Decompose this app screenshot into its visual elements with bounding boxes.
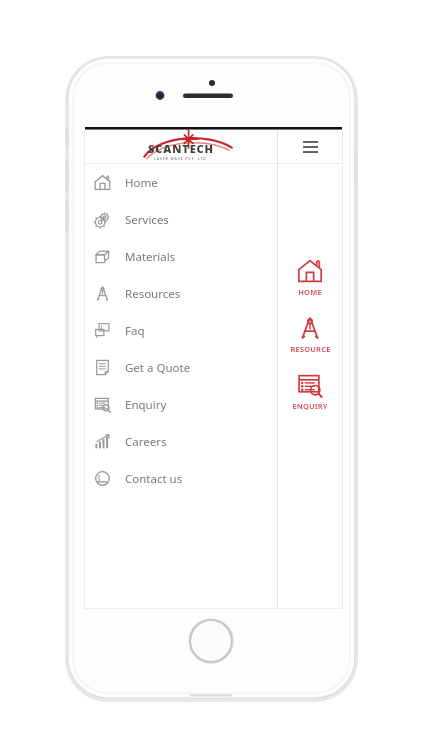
button[interactable]: Menu xyxy=(278,130,342,163)
button[interactable]: HOME xyxy=(278,256,342,299)
staticText: Services xyxy=(125,212,169,228)
staticText: Careers xyxy=(125,434,167,450)
button[interactable]: RESOURCE xyxy=(278,313,342,356)
button[interactable]: Scantech logo xyxy=(85,130,277,163)
staticText: Materials xyxy=(125,249,176,265)
staticText: Home xyxy=(125,175,158,191)
button[interactable]: Resources xyxy=(85,275,277,312)
staticText: Resources xyxy=(125,286,181,302)
button[interactable]: Contact us xyxy=(85,460,277,497)
button[interactable]: Careers xyxy=(85,423,277,460)
button[interactable]: ENQUIRY xyxy=(278,370,342,413)
staticText: SCANTECH xyxy=(148,141,214,156)
button[interactable]: Enquiry xyxy=(85,386,277,423)
staticText: Contact us xyxy=(125,471,183,487)
button[interactable]: Materials xyxy=(85,238,277,275)
staticText: HOME xyxy=(298,287,322,297)
staticText: Get a Quote xyxy=(125,360,191,376)
button[interactable]: Get a Quote xyxy=(85,349,277,386)
staticText: ENQUIRY xyxy=(292,401,328,411)
button[interactable]: Home xyxy=(85,164,277,201)
staticText: Enquiry xyxy=(125,397,167,413)
staticText: LASER WAVE PVT. LTD. xyxy=(154,156,209,161)
staticText: RESOURCE xyxy=(290,344,331,354)
staticText: Faq xyxy=(125,323,145,339)
button[interactable]: Faq xyxy=(85,312,277,349)
button[interactable]: Services xyxy=(85,201,277,238)
